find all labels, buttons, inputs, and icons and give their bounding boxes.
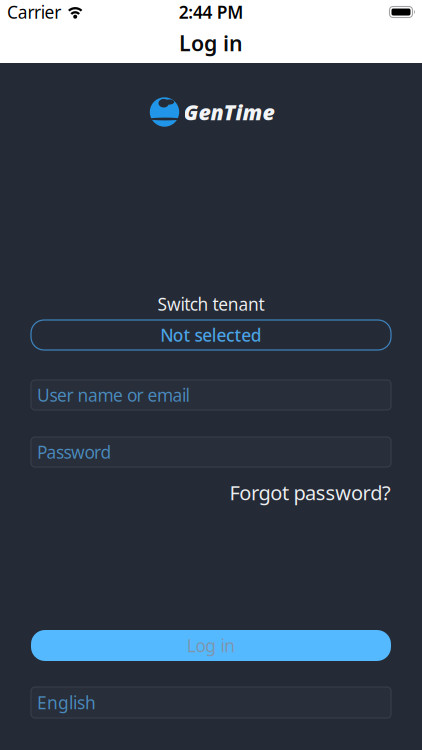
staticText: Log in [187, 634, 235, 657]
button[interactable]: English [31, 687, 391, 718]
button[interactable]: User name or email [31, 380, 391, 410]
button[interactable]: Log in [31, 630, 391, 661]
button[interactable]: Forgot password? [31, 479, 391, 506]
staticText: Log in [179, 29, 243, 57]
staticText: Password [37, 440, 111, 463]
staticText: English [37, 691, 96, 714]
staticText: GenTime [183, 98, 274, 126]
button[interactable]: Password [31, 437, 391, 467]
staticText: 2:44 PM [179, 0, 243, 23]
staticText: Carrier [7, 0, 61, 23]
staticText: User name or email [37, 383, 189, 406]
button[interactable]: Not selected [31, 320, 391, 350]
staticText: Forgot password? [229, 479, 391, 506]
staticText: Switch tenant [157, 292, 265, 315]
staticText: Not selected [160, 323, 262, 346]
